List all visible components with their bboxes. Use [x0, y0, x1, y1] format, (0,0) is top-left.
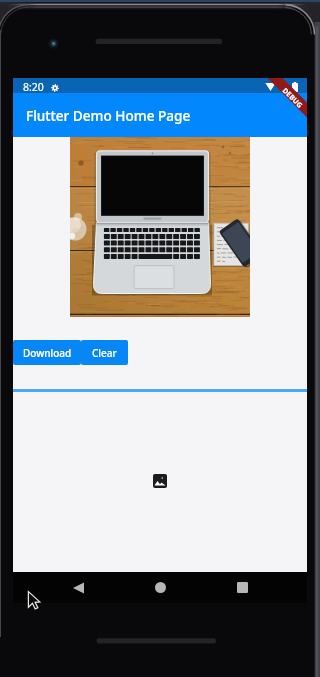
- button[interactable]: Download: [13, 340, 81, 365]
- staticText: Clear: [92, 346, 117, 360]
- staticText: DEBUG: [280, 86, 305, 111]
- staticText: Flutter Demo Home Page: [26, 106, 191, 125]
- button[interactable]: Home: [140, 572, 180, 603]
- button[interactable]: Recent apps: [222, 572, 262, 603]
- button[interactable]: Clear: [81, 340, 128, 365]
- staticText: Download: [23, 346, 72, 360]
- staticText: 8:20: [23, 80, 44, 94]
- button[interactable]: Back: [58, 572, 98, 603]
